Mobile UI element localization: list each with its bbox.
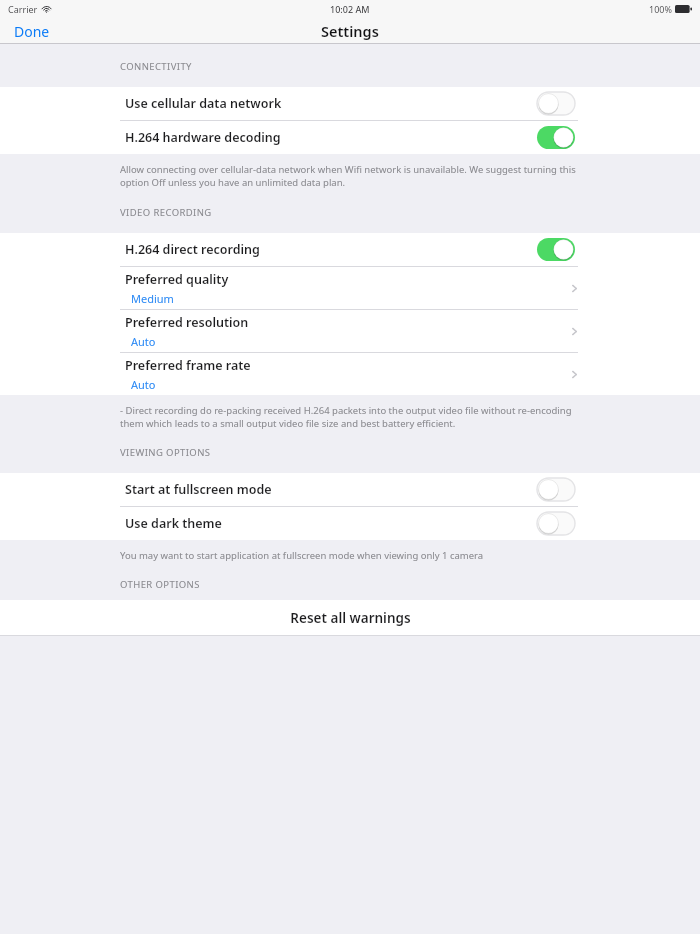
button[interactable]: Done [0, 19, 64, 44]
staticText: Use dark theme [125, 515, 222, 532]
staticText: Medium [131, 291, 174, 306]
button[interactable]: H.264 hardware decoding [0, 121, 700, 154]
button[interactable]: H.264 direct recording [0, 233, 700, 266]
staticText: Reset all warnings [290, 609, 411, 627]
staticText: Settings [321, 21, 379, 41]
button[interactable]: Start at fullscreen mode [0, 473, 700, 506]
staticText: - Direct recording do re-packing receive… [120, 404, 580, 430]
button[interactable]: Use cellular data network [0, 87, 700, 120]
button[interactable]: Use dark theme [0, 507, 700, 540]
button[interactable]: Off [537, 512, 575, 535]
staticText: VIDEO RECORDING [120, 206, 212, 219]
button[interactable]: Preferred frame rate [0, 353, 700, 395]
staticText: Start at fullscreen mode [125, 481, 272, 498]
staticText: CONNECTIVITY [120, 60, 192, 73]
staticText: Done [14, 22, 50, 41]
button[interactable]: Off [537, 92, 575, 115]
button[interactable]: On [537, 126, 575, 149]
staticText: OTHER OPTIONS [120, 578, 200, 591]
staticText: Preferred resolution [125, 314, 249, 331]
staticText: Preferred quality [125, 271, 229, 288]
button[interactable]: On [537, 238, 575, 261]
button[interactable]: Off [537, 478, 575, 501]
button[interactable]: Reset all warnings [0, 600, 700, 635]
staticText: Use cellular data network [125, 95, 282, 112]
staticText: Allow connecting over cellular-data netw… [120, 163, 580, 189]
staticText: Carrier [8, 3, 38, 15]
staticText: 100% [649, 3, 672, 15]
button[interactable]: Preferred resolution [0, 310, 700, 352]
staticText: You may want to start application at ful… [120, 549, 484, 562]
staticText: Preferred frame rate [125, 357, 251, 374]
staticText: Auto [131, 334, 156, 349]
staticText: VIEWING OPTIONS [120, 446, 211, 459]
staticText: H.264 direct recording [125, 241, 260, 258]
staticText: 10:02 AM [330, 3, 370, 15]
button[interactable]: Preferred quality [0, 267, 700, 309]
staticText: H.264 hardware decoding [125, 129, 281, 146]
staticText: Auto [131, 377, 156, 392]
